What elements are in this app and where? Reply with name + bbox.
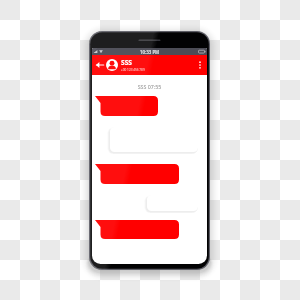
staticText: SSS [121,58,132,67]
staticText: SSS 07:55 [92,83,207,90]
button[interactable]: More options [194,59,206,71]
staticText: 10:33 PM [140,49,160,55]
staticText: +00 123 456 789 [121,68,145,72]
button[interactable]: Back [94,59,106,71]
button[interactable]: Contact avatar [106,59,118,71]
button[interactable] [95,164,179,184]
button[interactable] [95,96,158,116]
button[interactable] [95,220,179,239]
button[interactable]: Back [92,55,207,75]
